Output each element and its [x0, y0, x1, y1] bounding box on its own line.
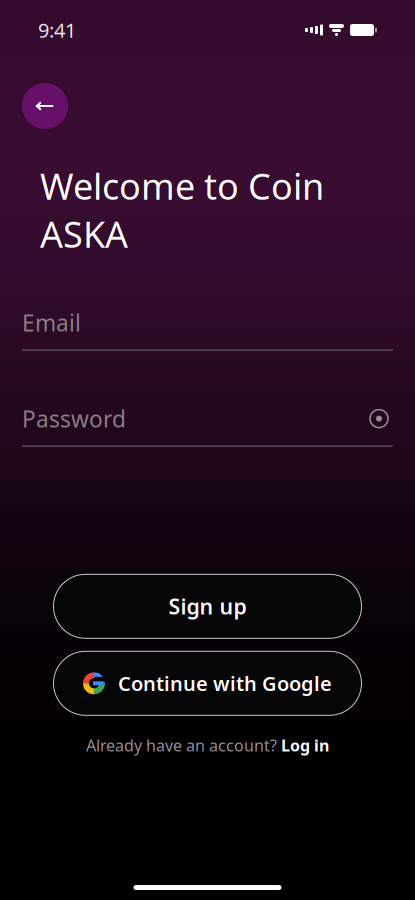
button[interactable]: Already have an account?	[76, 733, 339, 757]
button[interactable]: Show password	[365, 405, 393, 433]
button[interactable]: Back	[22, 83, 68, 129]
button[interactable]: Sign up	[53, 574, 361, 638]
staticText: Continue with Google	[118, 670, 332, 697]
staticText: Welcome to Coin ASKA	[40, 162, 324, 258]
staticText: Email	[22, 308, 81, 338]
staticText: 9:41	[38, 17, 76, 43]
staticText: Log in	[281, 735, 329, 756]
button[interactable]: Continue with Google	[53, 651, 361, 715]
staticText: Already have an account?	[86, 735, 277, 756]
staticText: Sign up	[168, 592, 246, 620]
staticText: Password	[22, 404, 126, 434]
